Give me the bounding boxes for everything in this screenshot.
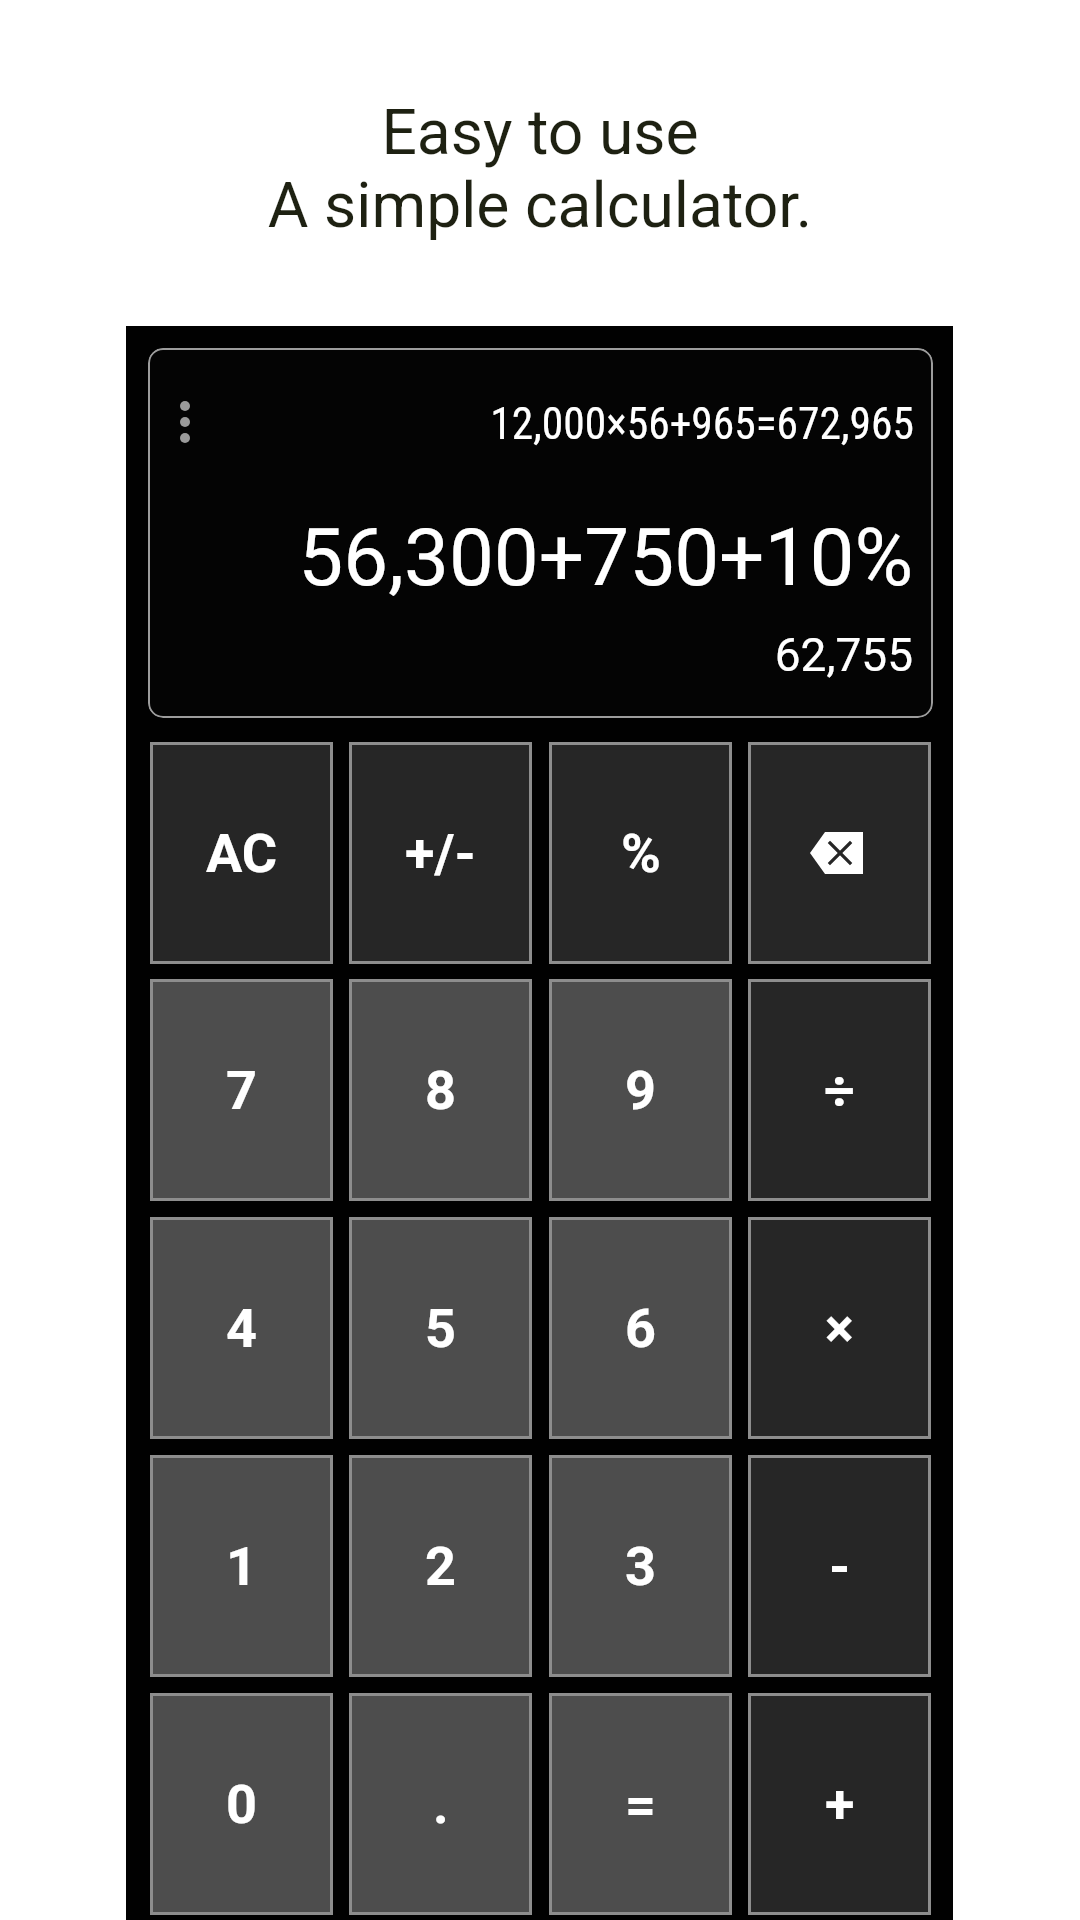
button[interactable]: 7: [150, 979, 333, 1201]
button[interactable]: .: [349, 1693, 532, 1915]
staticText: 56,300+750+10%: [148, 511, 913, 605]
button[interactable]: 3: [549, 1455, 732, 1677]
button[interactable]: 9: [549, 979, 732, 1201]
staticText: ×: [825, 1297, 854, 1360]
staticText: 2: [425, 1535, 456, 1598]
button[interactable]: ÷: [748, 979, 931, 1201]
staticText: 7: [226, 1059, 257, 1122]
staticText: 62,755: [148, 628, 913, 682]
staticText: ÷: [824, 1059, 855, 1122]
staticText: -: [829, 1535, 851, 1598]
button[interactable]: More options: [180, 401, 190, 443]
button[interactable]: 2: [349, 1455, 532, 1677]
staticText: 6: [625, 1297, 656, 1360]
staticText: AC: [206, 822, 278, 885]
staticText: 3: [625, 1535, 656, 1598]
staticText: =: [625, 1773, 656, 1836]
button[interactable]: 0: [150, 1693, 333, 1915]
button[interactable]: 5: [349, 1217, 532, 1439]
staticText: Easy to use A simple calculator.: [0, 96, 1080, 243]
button[interactable]: +/-: [349, 742, 532, 964]
staticText: 8: [425, 1059, 456, 1122]
button[interactable]: +: [748, 1693, 931, 1915]
staticText: .: [433, 1773, 449, 1836]
button[interactable]: %: [549, 742, 732, 964]
staticText: 1: [226, 1535, 257, 1598]
staticText: %: [621, 822, 661, 885]
staticText: 4: [226, 1297, 257, 1360]
button[interactable]: =: [549, 1693, 732, 1915]
staticText: 0: [226, 1773, 257, 1836]
staticText: 12,000×56+965=672,965: [148, 399, 914, 450]
button[interactable]: 1: [150, 1455, 333, 1677]
button[interactable]: ×: [748, 1217, 931, 1439]
staticText: +: [825, 1773, 855, 1836]
staticText: +/-: [405, 822, 476, 885]
button[interactable]: 4: [150, 1217, 333, 1439]
staticText: 5: [425, 1297, 456, 1360]
button[interactable]: AC: [150, 742, 333, 964]
button[interactable]: Backspace: [748, 742, 931, 964]
button[interactable]: 8: [349, 979, 532, 1201]
button[interactable]: -: [748, 1455, 931, 1677]
staticText: 9: [625, 1059, 656, 1122]
button[interactable]: 6: [549, 1217, 732, 1439]
